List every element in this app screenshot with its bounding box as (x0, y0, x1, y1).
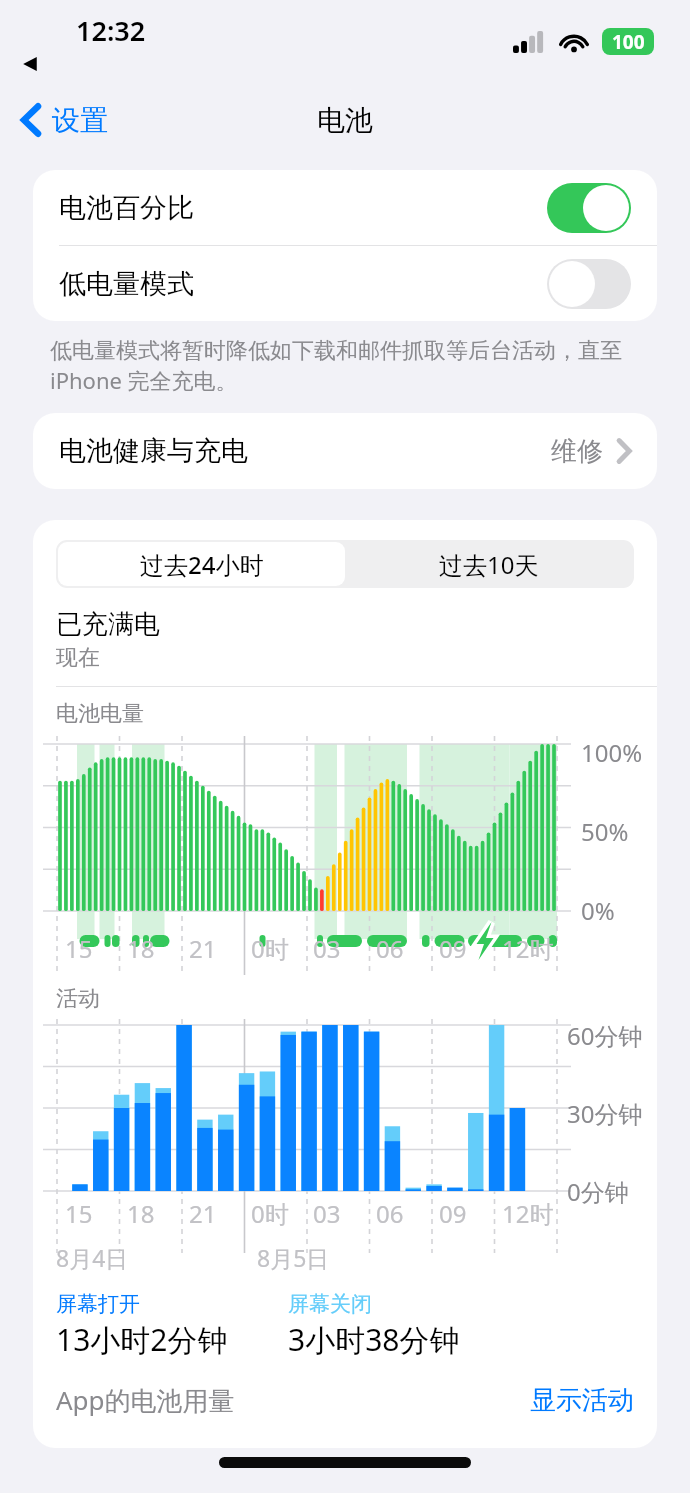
staticText: 维修 (551, 435, 603, 468)
staticText: 06 (376, 932, 404, 965)
staticText: 18 (127, 932, 155, 965)
staticText: 21 (189, 1197, 217, 1230)
staticText: 活动 (56, 985, 100, 1013)
staticText: 15 (65, 932, 93, 965)
button[interactable]: 过去10天 (345, 542, 632, 586)
staticText: 电池百分比 (59, 191, 194, 225)
staticText: 过去24小时 (140, 548, 264, 581)
staticText: 3小时38分钟 (288, 1319, 460, 1360)
staticText: 已充满电 (56, 608, 160, 641)
staticText: 13小时2分钟 (56, 1319, 228, 1360)
staticText: 0时 (251, 932, 289, 965)
staticText: 电池健康与充电 (59, 434, 248, 468)
button[interactable]: 设置 (14, 96, 114, 144)
staticText: 显示活动 (530, 1384, 634, 1417)
staticText: 低电量模式 (59, 267, 194, 301)
staticText: 电池电量 (56, 700, 144, 728)
button[interactable]: 电池百分比 (33, 170, 657, 245)
staticText: 09 (439, 1197, 467, 1230)
staticText: 8月4日 (56, 1242, 129, 1273)
staticText: 屏幕打开 (56, 1291, 140, 1317)
staticText: 03 (313, 932, 341, 965)
staticText: 12:32 (76, 12, 146, 49)
staticText: 21 (189, 932, 217, 965)
staticText: 100% (581, 736, 643, 769)
staticText: 09 (439, 932, 467, 965)
staticText: 18 (127, 1197, 155, 1230)
staticText: 15 (65, 1197, 93, 1230)
staticText: 12时 (502, 1197, 554, 1230)
staticText: 0分钟 (567, 1175, 629, 1208)
button[interactable]: 电池健康与充电 (33, 413, 657, 489)
staticText: 06 (376, 1197, 404, 1230)
staticText: 设置 (52, 103, 108, 138)
staticText: 屏幕关闭 (288, 1291, 372, 1317)
staticText: 8月5日 (257, 1242, 330, 1273)
staticText: 低电量模式将暂时降低如下载和邮件抓取等后台活动，直至 iPhone 完全充电。 (50, 334, 642, 395)
staticText: 30分钟 (567, 1097, 643, 1130)
staticText: 电池 (317, 103, 373, 138)
staticText: 60分钟 (567, 1019, 643, 1052)
staticText: 0时 (251, 1197, 289, 1230)
staticText: 过去10天 (439, 548, 539, 581)
button[interactable]: 显示活动 (530, 1384, 634, 1417)
staticText: 0% (581, 894, 615, 927)
staticText: App的电池用量 (56, 1382, 235, 1418)
staticText: 12时 (502, 932, 554, 965)
staticText: 50% (581, 815, 629, 848)
staticText: 现在 (56, 644, 100, 672)
staticText: 100 (612, 29, 645, 55)
button[interactable]: 低电量模式 (33, 246, 657, 321)
staticText: 03 (313, 1197, 341, 1230)
button[interactable]: 过去24小时 (58, 542, 345, 586)
